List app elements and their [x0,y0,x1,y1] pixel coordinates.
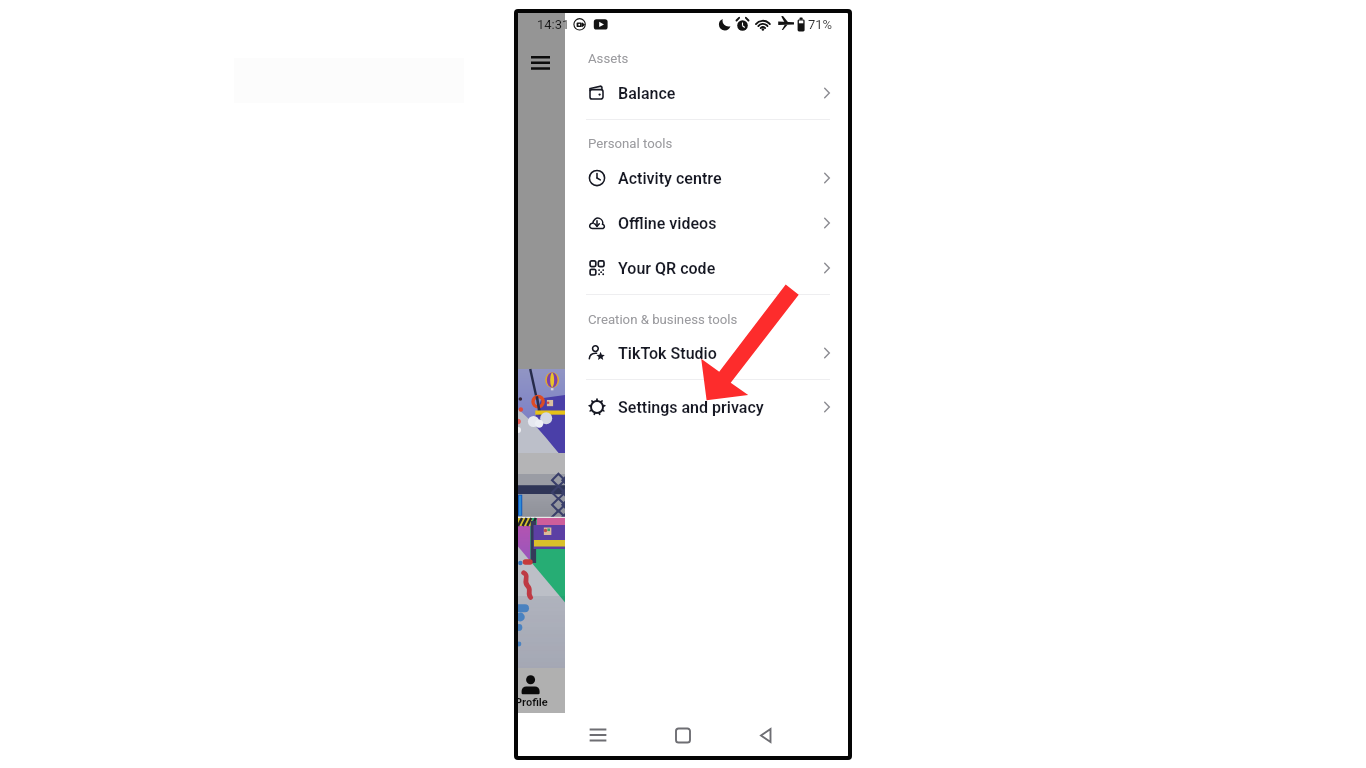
staticText: 14:31 [537,17,570,32]
button[interactable]: Balance [565,75,847,111]
staticText: Offline videos [618,214,717,233]
staticText: Balance [618,84,676,103]
staticText: Assets [588,51,629,66]
staticText: Profile [518,696,548,709]
button[interactable]: Offline videos [565,205,847,241]
staticText: TikTok Studio [618,344,717,363]
staticText: Your QR code [618,259,716,278]
staticText: Activity centre [618,169,722,188]
button[interactable]: Your QR code [565,250,847,286]
button[interactable]: Activity centre [565,160,847,196]
staticText: 71% [808,17,833,32]
button[interactable]: Home [672,724,694,746]
button[interactable]: Back [755,724,777,746]
button[interactable]: Menu [531,54,550,71]
button[interactable]: TikTok Studio [565,335,847,371]
button[interactable]: Recent apps [587,724,609,746]
staticText: Personal tools [588,136,673,151]
button[interactable]: Profile [518,668,565,713]
staticText: Creation & business tools [588,312,738,327]
button[interactable]: Settings and privacy [565,389,847,425]
staticText: Settings and privacy [618,398,764,417]
